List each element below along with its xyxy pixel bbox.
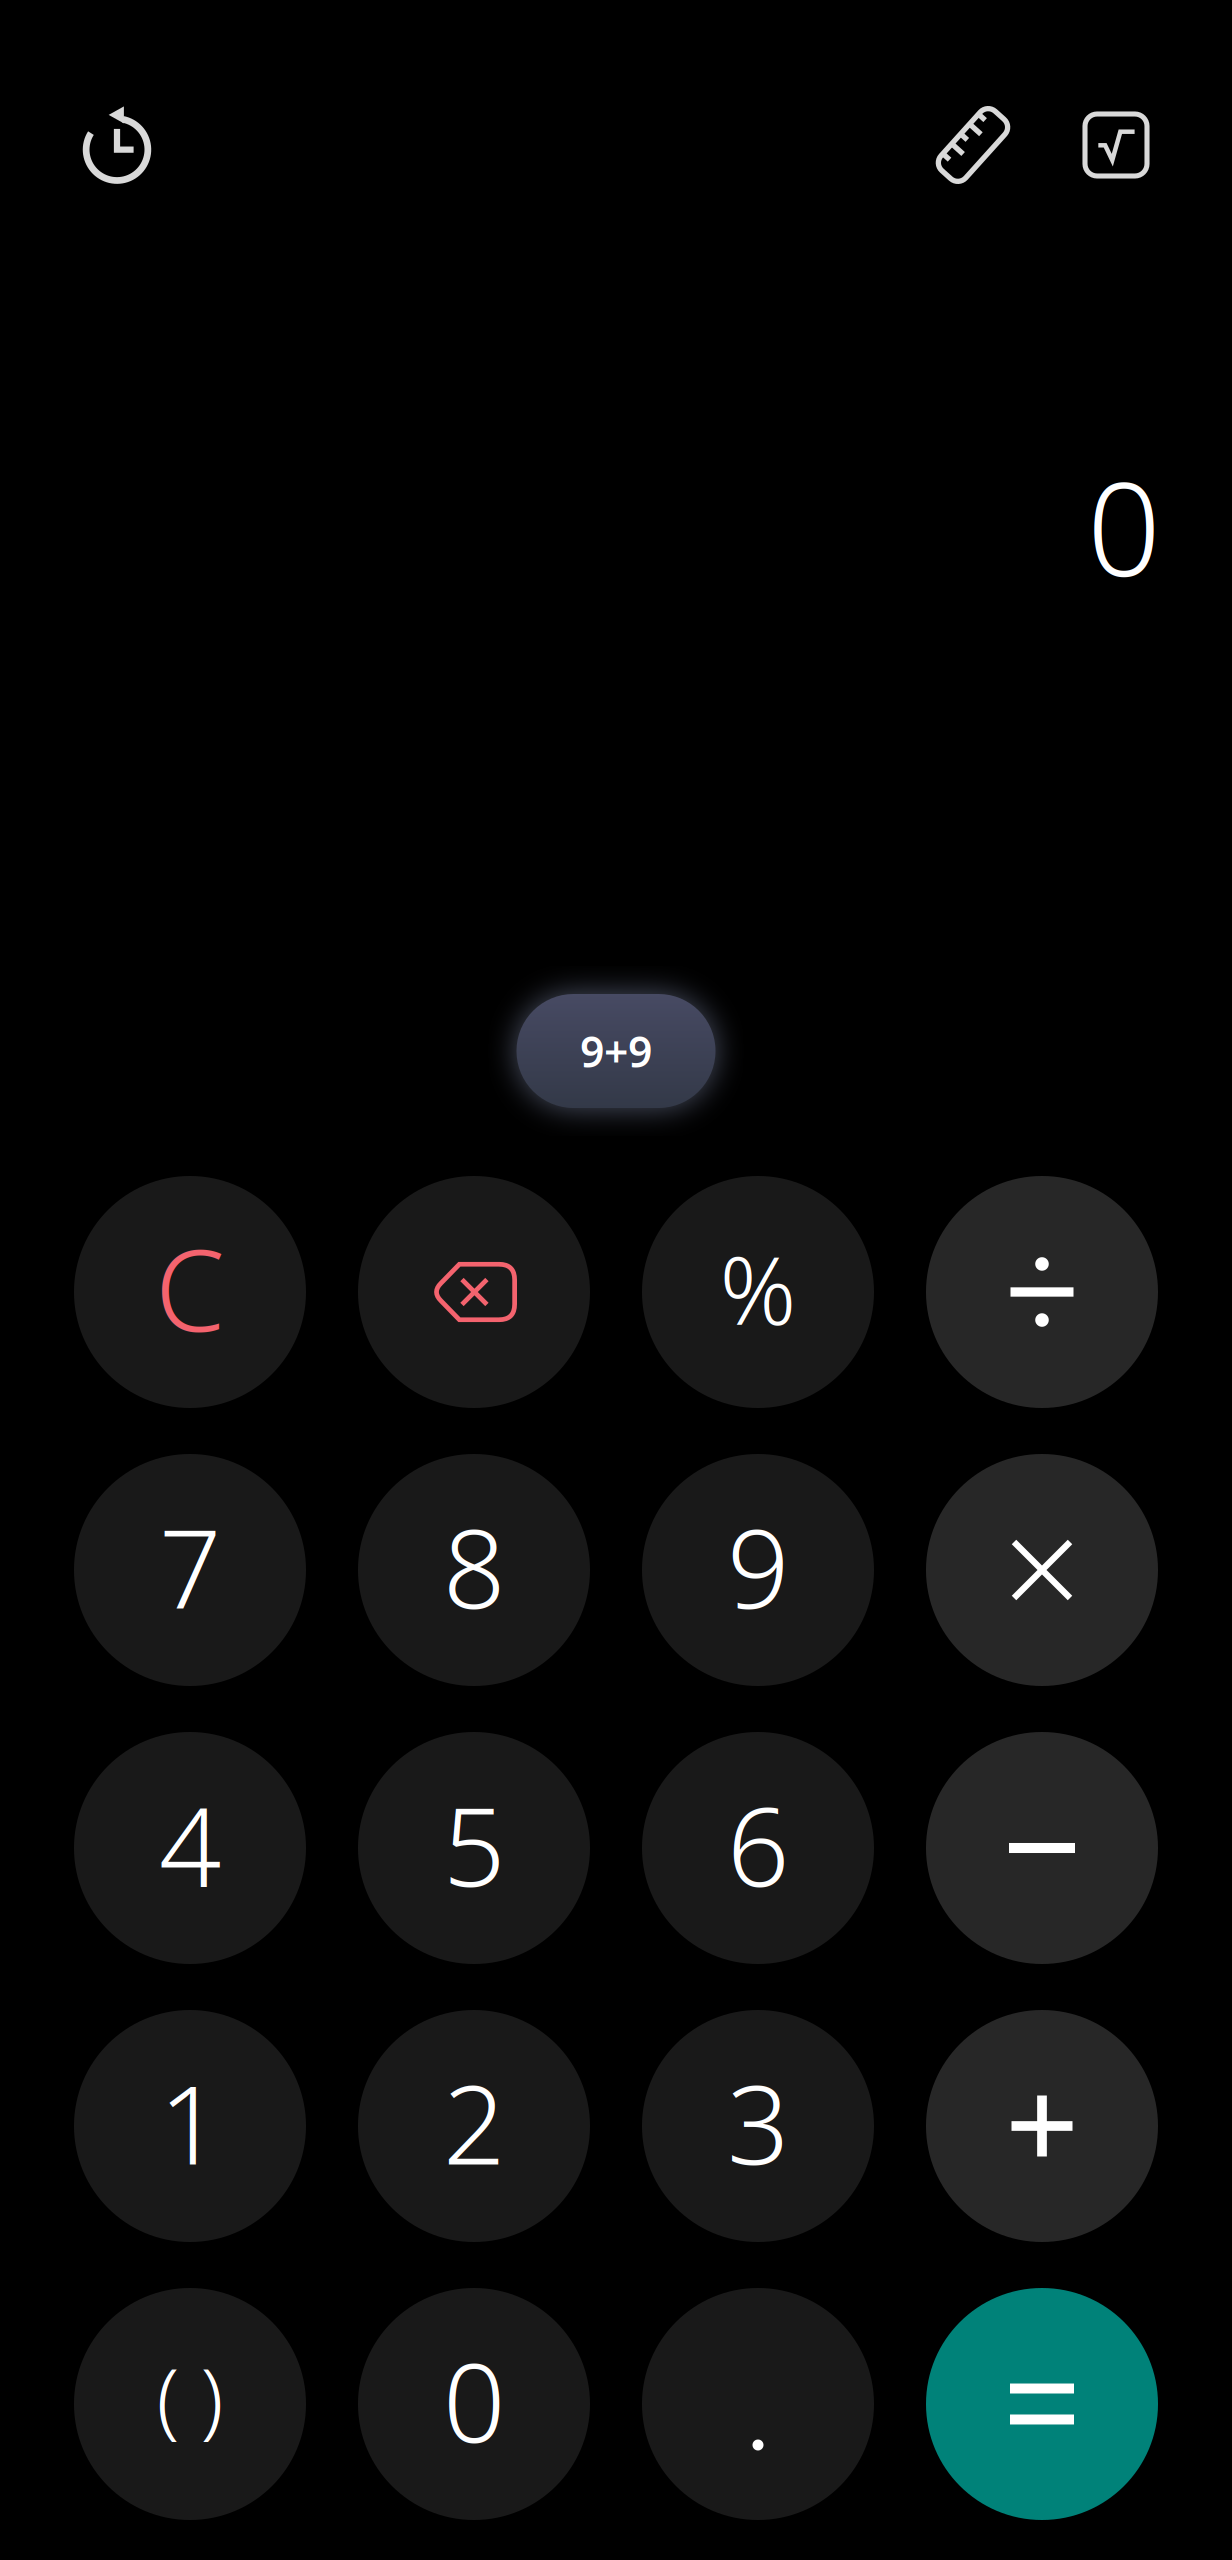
staticText: % bbox=[719, 1225, 796, 1351]
button[interactable]: C bbox=[74, 1176, 306, 1408]
button[interactable]: Decimal point bbox=[642, 2288, 874, 2520]
button[interactable]: Unit converter bbox=[913, 85, 1033, 205]
staticText: 0 bbox=[443, 2327, 505, 2473]
button[interactable]: 3 bbox=[642, 2010, 874, 2242]
button[interactable]: 5 bbox=[358, 1732, 590, 1964]
button[interactable]: Delete bbox=[358, 1176, 590, 1408]
button[interactable]: 6 bbox=[642, 1732, 874, 1964]
button[interactable]: % bbox=[642, 1176, 874, 1408]
button[interactable]: 9 bbox=[642, 1454, 874, 1686]
staticText: 7 bbox=[159, 1493, 221, 1639]
staticText: 9 bbox=[727, 1493, 789, 1639]
button[interactable]: Plus bbox=[926, 2010, 1158, 2242]
staticText: ( ) bbox=[156, 2342, 223, 2452]
button[interactable]: ( ) bbox=[74, 2288, 306, 2520]
staticText: 8 bbox=[443, 1493, 505, 1639]
button[interactable]: 7 bbox=[74, 1454, 306, 1686]
button[interactable]: Equals bbox=[926, 2288, 1158, 2520]
button[interactable]: Minus bbox=[926, 1732, 1158, 1964]
staticText: 4 bbox=[159, 1771, 221, 1917]
button[interactable]: Scientific bbox=[1056, 85, 1176, 205]
staticText: 2 bbox=[443, 2049, 505, 2195]
button[interactable]: 4 bbox=[74, 1732, 306, 1964]
button[interactable]: History bbox=[57, 86, 177, 206]
button[interactable]: 9+9 bbox=[516, 994, 715, 1108]
staticText: 0 bbox=[1087, 440, 1161, 612]
button[interactable]: Multiply bbox=[926, 1454, 1158, 1686]
button[interactable]: 0 bbox=[358, 2288, 590, 2520]
staticText: 1 bbox=[159, 2049, 221, 2195]
staticText: 5 bbox=[443, 1771, 505, 1917]
staticText: 3 bbox=[727, 2049, 789, 2195]
staticText: 6 bbox=[727, 1771, 789, 1917]
button[interactable]: Divide bbox=[926, 1176, 1158, 1408]
staticText: C bbox=[155, 1214, 225, 1362]
button[interactable]: 2 bbox=[358, 2010, 590, 2242]
button[interactable]: 8 bbox=[358, 1454, 590, 1686]
button[interactable]: 1 bbox=[74, 2010, 306, 2242]
staticText: 9+9 bbox=[580, 1023, 652, 1079]
